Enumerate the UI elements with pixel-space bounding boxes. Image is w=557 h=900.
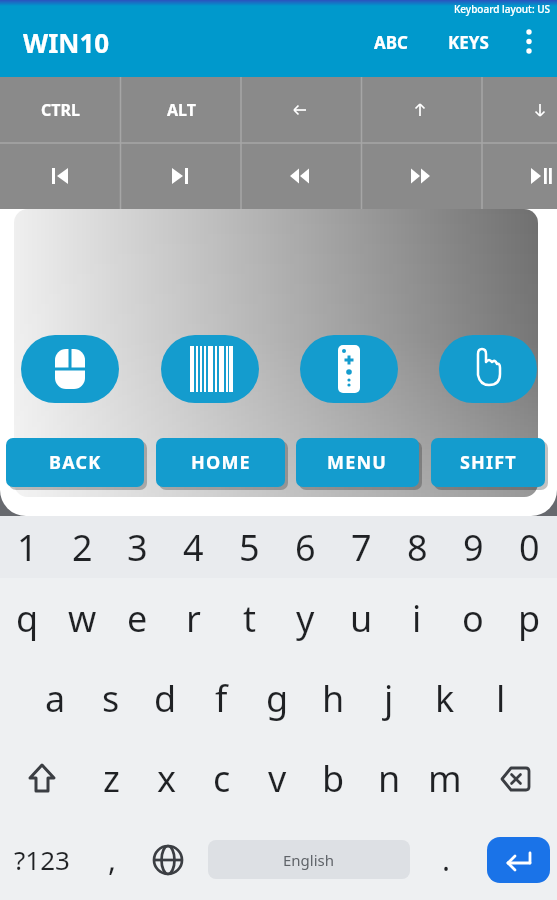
button[interactable] [362, 77, 482, 143]
staticText: b [322, 754, 345, 803]
button[interactable]: . [412, 819, 480, 900]
staticText: 8 [407, 523, 428, 572]
button[interactable]: SHIFT [431, 438, 545, 487]
staticText: a [45, 674, 66, 723]
button[interactable] [362, 143, 482, 209]
button[interactable]: 5 [221, 516, 277, 578]
button[interactable] [487, 837, 550, 883]
staticText: v [268, 754, 287, 803]
button[interactable]: 9 [445, 516, 501, 578]
button[interactable]: f [193, 658, 249, 738]
button[interactable]: d [138, 658, 193, 738]
button[interactable]: m [417, 738, 473, 819]
staticText: 0 [519, 523, 540, 572]
staticText: ABC [374, 31, 408, 54]
staticText: h [322, 674, 345, 723]
button[interactable]: i [389, 578, 445, 658]
button[interactable]: 6 [277, 516, 333, 578]
button[interactable]: c [194, 738, 249, 819]
staticText: 9 [463, 523, 484, 572]
button[interactable]: j [361, 658, 417, 738]
staticText: MENU [327, 450, 388, 475]
staticText: ?123 [14, 842, 70, 877]
button[interactable]: a [28, 658, 83, 738]
staticText: e [127, 594, 148, 643]
button[interactable]: z [84, 738, 139, 819]
staticText: BACK [49, 450, 102, 475]
staticText: x [157, 754, 177, 803]
button[interactable]: h [305, 658, 361, 738]
button[interactable]: ?123 [0, 819, 84, 900]
button[interactable]: e [110, 578, 165, 658]
button[interactable]: KEYS [440, 23, 497, 62]
button[interactable]: 0 [501, 516, 557, 578]
button[interactable]: u [333, 578, 389, 658]
button[interactable]: CTRL [0, 77, 120, 143]
button[interactable] [121, 143, 241, 209]
button[interactable]: q [0, 578, 55, 658]
staticText: c [213, 754, 231, 803]
staticText: d [154, 674, 177, 723]
button[interactable] [0, 143, 120, 209]
button[interactable]: ALT [121, 77, 241, 143]
button[interactable] [21, 335, 119, 403]
button[interactable]: w [55, 578, 110, 658]
button[interactable] [241, 77, 361, 143]
button[interactable]: English [208, 840, 410, 879]
button[interactable]: k [417, 658, 473, 738]
button[interactable]: n [361, 738, 417, 819]
button[interactable]: , [84, 819, 140, 900]
staticText: y [296, 594, 315, 643]
staticText: CTRL [41, 99, 80, 121]
staticText: m [428, 754, 462, 803]
button[interactable] [482, 143, 557, 209]
button[interactable] [0, 738, 84, 819]
staticText: Keyboard layout: US [454, 2, 551, 16]
staticText: English [283, 850, 335, 870]
button[interactable] [482, 77, 557, 143]
button[interactable] [241, 143, 361, 209]
button[interactable]: 1 [0, 516, 55, 578]
staticText: SHIFT [460, 450, 517, 475]
button[interactable] [439, 335, 537, 403]
staticText: 2 [72, 523, 93, 572]
button[interactable]: b [305, 738, 361, 819]
button[interactable]: 7 [333, 516, 389, 578]
button[interactable] [511, 24, 547, 60]
button[interactable]: HOME [156, 438, 285, 487]
button[interactable] [300, 335, 398, 403]
button[interactable] [140, 819, 196, 900]
button[interactable] [161, 335, 259, 403]
staticText: q [16, 594, 39, 643]
button[interactable] [473, 738, 557, 819]
button[interactable]: ABC [366, 23, 416, 62]
button[interactable]: l [473, 658, 529, 738]
button[interactable]: p [501, 578, 557, 658]
staticText: s [102, 674, 120, 723]
button[interactable]: BACK [6, 438, 144, 487]
button[interactable]: MENU [296, 438, 419, 487]
staticText: 6 [295, 523, 316, 572]
staticText: 4 [183, 523, 204, 572]
button[interactable]: x [139, 738, 194, 819]
button[interactable]: o [445, 578, 501, 658]
button[interactable]: y [277, 578, 333, 658]
button[interactable]: t [221, 578, 277, 658]
button[interactable]: r [165, 578, 221, 658]
staticText: w [68, 594, 97, 643]
button[interactable]: v [249, 738, 305, 819]
staticText: u [350, 594, 373, 643]
staticText: l [496, 674, 506, 723]
button[interactable]: 2 [55, 516, 110, 578]
staticText: KEYS [448, 31, 489, 54]
staticText: 5 [239, 523, 260, 572]
staticText: , [108, 839, 117, 880]
staticText: o [462, 594, 484, 643]
button[interactable]: s [83, 658, 138, 738]
staticText: t [243, 594, 256, 643]
button[interactable]: 3 [110, 516, 165, 578]
button[interactable]: 4 [165, 516, 221, 578]
button[interactable]: 8 [389, 516, 445, 578]
staticText: . [442, 839, 451, 880]
button[interactable]: g [249, 658, 305, 738]
